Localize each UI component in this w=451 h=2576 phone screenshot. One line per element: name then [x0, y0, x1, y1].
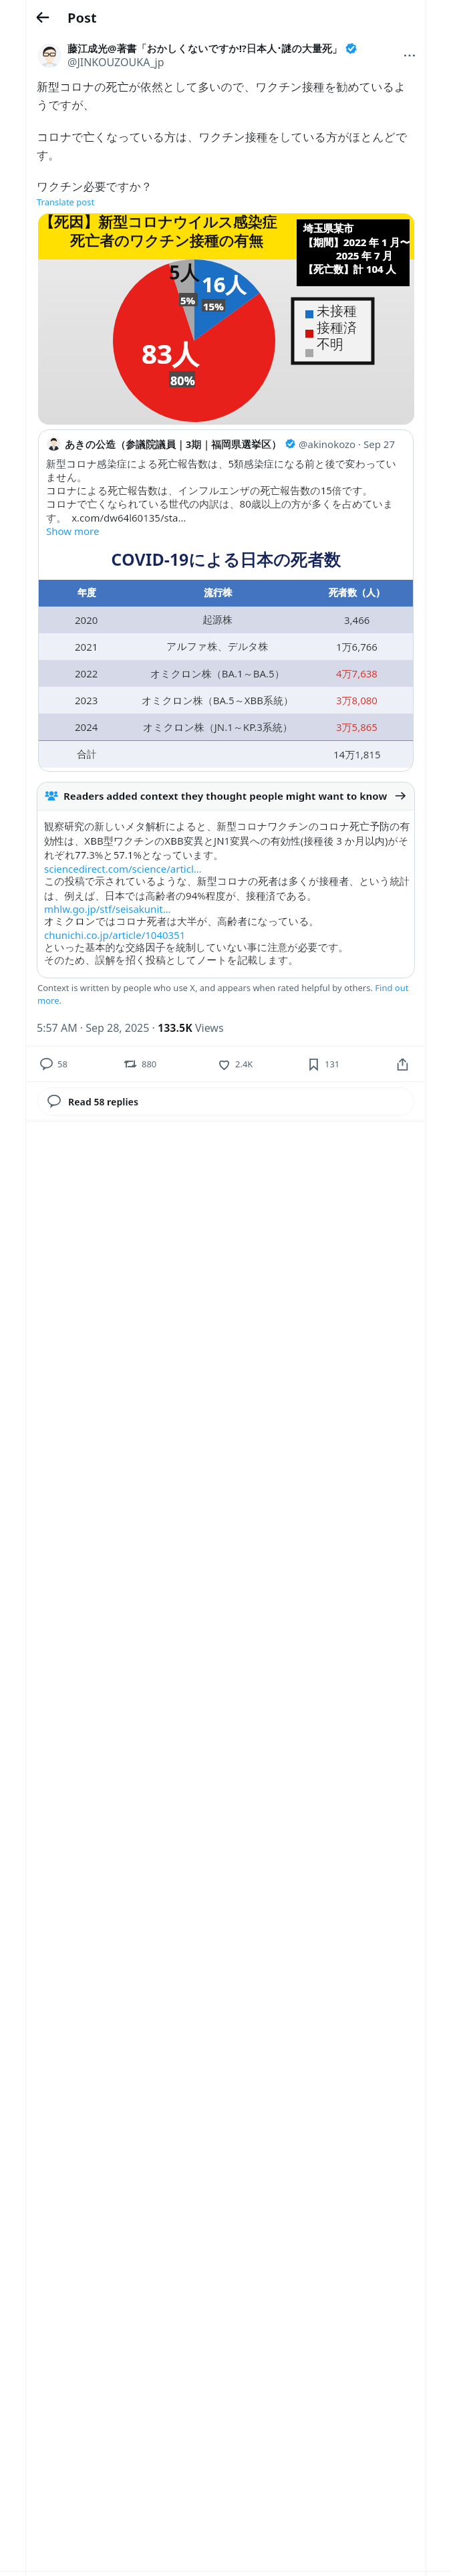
staticText: Translate post [37, 196, 95, 208]
button[interactable]: Read 58 replies [37, 1087, 414, 1115]
button[interactable]: mhlw.go.jp/stf/seisakunit… [44, 902, 171, 916]
staticText: 58 [57, 1058, 67, 1070]
staticText: Readers added context they thought peopl… [63, 789, 395, 802]
button[interactable]: Pie chart: vaccination status of COVID-1… [38, 213, 414, 425]
staticText: 未接種 [317, 303, 357, 320]
staticText: 流行株 [204, 587, 232, 599]
button[interactable]: Translate post [37, 196, 95, 208]
staticText: 4万7,638 [336, 667, 378, 680]
staticText: 【死因】新型コロナウイルス感染症 [39, 213, 277, 232]
staticText: 接種済 [317, 320, 357, 336]
staticText: オミクロン株（JN.1～KP.3系統） [143, 720, 293, 734]
staticText: 合計 [77, 748, 97, 761]
staticText: 16人 [202, 270, 247, 298]
staticText: といった基本的な交絡因子を統制していない事に注意が必要です。 [44, 942, 349, 954]
staticText: あきの公造（参議院議員｜3期｜福岡県選挙区） [65, 437, 282, 451]
button[interactable]: chunichi.co.jp/article/1040351 [44, 928, 186, 942]
staticText: 2020 [75, 613, 98, 627]
staticText: Read 58 replies [68, 1095, 138, 1108]
button[interactable]: 880 [123, 1051, 216, 1077]
staticText: 年度 [78, 587, 96, 599]
staticText: そのため、誤解を招く投稿としてノートを記載します。 [44, 954, 299, 967]
button[interactable]: Readers added context they thought peopl… [37, 782, 415, 810]
button[interactable]: あきの公造（参議院議員｜3期｜福岡県選挙区） [38, 429, 414, 772]
staticText: 2022 [75, 667, 98, 680]
staticText: 5人 [169, 259, 200, 286]
staticText: Show more [46, 524, 100, 538]
staticText: 【期間】2022 年 1 月〜 [303, 235, 410, 249]
staticText: 2021 [75, 640, 98, 653]
staticText: 880 [142, 1058, 157, 1070]
staticText: 80% [170, 372, 195, 389]
staticText: 観察研究の新しいメタ解析によると、新型コロナワクチンのコロナ死亡予防の有効性は、… [44, 821, 414, 862]
staticText: 死者数（人） [329, 587, 385, 599]
button[interactable]: 131 [306, 1051, 340, 1077]
staticText: 死亡者のワクチン接種の有無 [70, 232, 264, 251]
staticText: 新型コロナ感染症による死亡報告数は、5類感染症になる前と後で変わっていません。 [46, 457, 406, 484]
staticText: 5:57 AM · Sep 28, 2025 · 133.5K Views [37, 1021, 224, 1035]
staticText: オミクロン株（BA.1～BA.5） [150, 667, 285, 680]
staticText: 2023 [75, 693, 98, 707]
staticText: ワクチン必要ですか？ [37, 180, 152, 194]
staticText: 2.4K [235, 1058, 253, 1070]
button[interactable]: Share [392, 1053, 413, 1075]
staticText: コロナで亡くなられている世代の内訳は、80歳以上の方が多くを占めています。 x.… [46, 497, 406, 524]
button[interactable]: 58 [39, 1051, 123, 1077]
staticText: 起源株 [202, 614, 233, 627]
button[interactable]: Back [30, 5, 55, 30]
staticText: オミクロン株（BA.5～XBB系統） [142, 693, 293, 707]
staticText: 新型コロナの死亡が依然として多いので、ワクチン接種を勧めているようですが、 [37, 80, 415, 112]
staticText: @JINKOUZOUKA_jp [67, 55, 164, 70]
button[interactable]: sciencedirect.com/science/articl… [44, 862, 202, 875]
staticText: Post [67, 9, 97, 27]
staticText: @akinokozo · Sep 27 [299, 437, 395, 451]
staticText: この投稿で示されているような、新型コロナの死者は多くが接種者、という統計は、例え… [44, 875, 414, 902]
staticText: COVID-19による日本の死者数 [38, 548, 414, 570]
staticText: Context is written by people who use X, … [37, 982, 412, 1006]
staticText: 2024 [75, 720, 98, 734]
staticText: 3万8,080 [336, 693, 378, 707]
button[interactable]: 2.4K [216, 1051, 306, 1077]
staticText: コロナによる死亡報告数は、インフルエンザの死亡報告数の15倍です。 [46, 484, 373, 497]
staticText: 1万6,766 [336, 640, 378, 653]
staticText: 藤江成光@著書「おかしくないですか!?日本人･謎の大量死」 [67, 41, 342, 55]
staticText: 3,466 [344, 613, 370, 627]
staticText: オミクロンではコロナ死者は大半が、高齢者になっている。 [44, 916, 319, 928]
staticText: 5% [180, 294, 196, 307]
button[interactable]: Show more [46, 524, 100, 538]
staticText: 【死亡数】計 104 人 [303, 262, 396, 276]
staticText: 15% [203, 300, 224, 313]
staticText: 不明 [317, 336, 343, 353]
staticText: 3万5,865 [336, 720, 378, 734]
staticText: 14万1,815 [333, 748, 381, 761]
staticText: 埼玉県某市 [303, 223, 353, 235]
staticText: 83人 [142, 335, 199, 372]
staticText: 131 [325, 1058, 340, 1070]
staticText: 2025 年 7 月 [336, 249, 393, 262]
staticText: アルファ株、デルタ株 [166, 641, 269, 653]
button[interactable]: More options [399, 45, 420, 66]
staticText: コロナで亡くなっている方は、ワクチン接種をしている方がほとんどです。 [37, 130, 415, 163]
button[interactable]: Table: COVID-19 deaths in Japan [38, 538, 414, 768]
